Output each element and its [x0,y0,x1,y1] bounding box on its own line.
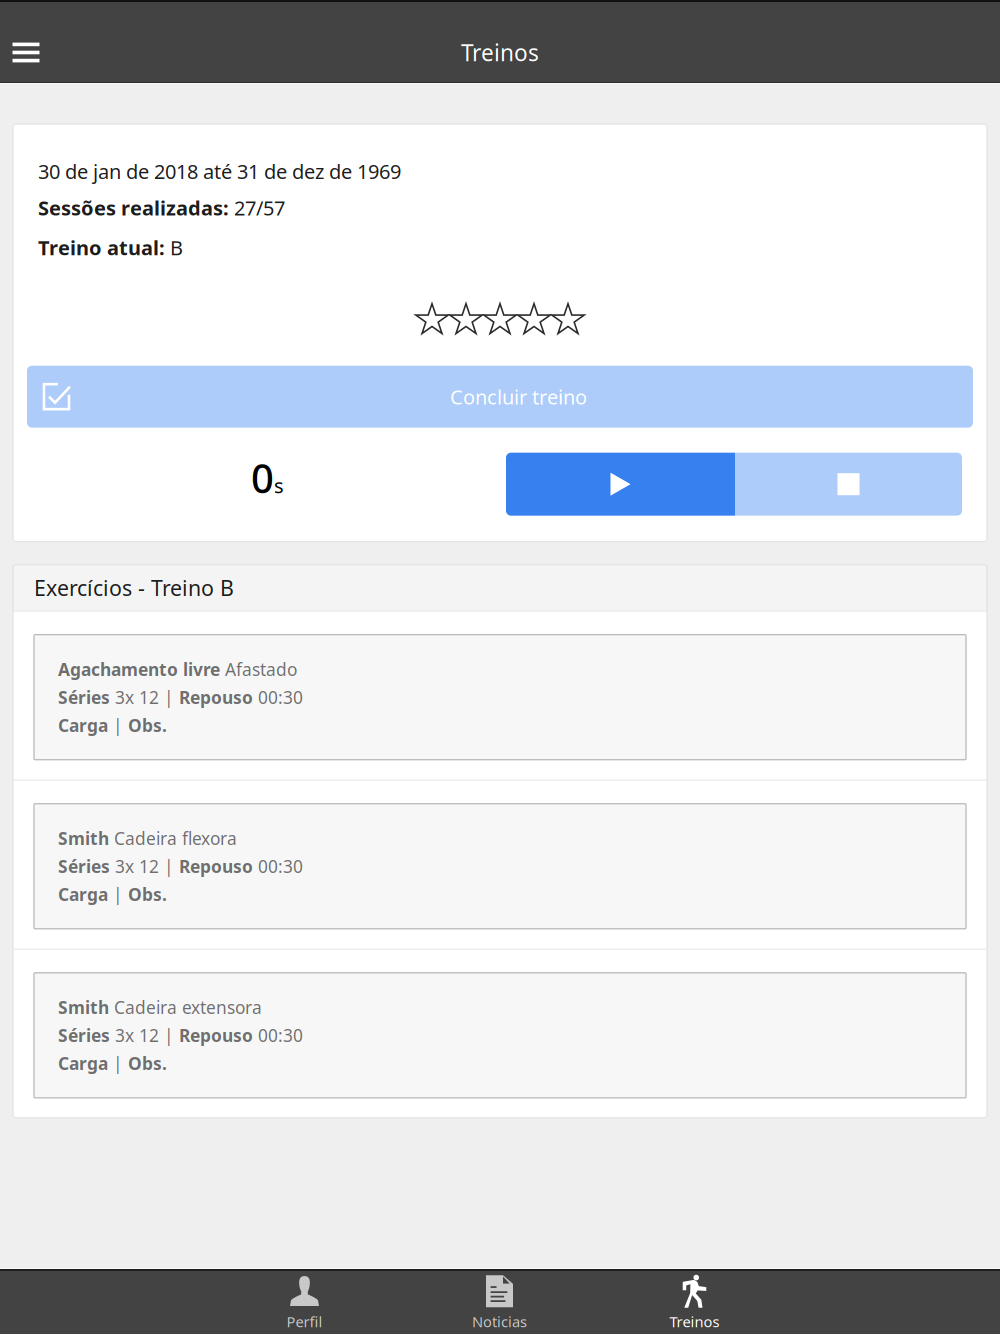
staticText: Perfil [286,1312,322,1331]
button[interactable]: Iniciar [506,453,735,516]
button[interactable]: Noticias [402,1270,597,1334]
button[interactable]: Parar [735,453,962,516]
staticText: Carga | Obs. [58,1052,167,1075]
button[interactable]: Smith Cadeira extensora [13,950,987,1118]
button[interactable]: Agachamento livre Afastado [13,612,987,780]
staticText: Séries 3x 12 | Repouso 00:30 [58,1024,303,1047]
staticText: Treinos [669,1312,719,1331]
staticText: 30 de jan de 2018 até 31 de dez de 1969 [38,158,401,185]
staticText: Treinos [461,37,539,67]
button[interactable]: Treinos [597,1270,792,1334]
staticText: Exercícios - Treino B [34,573,234,602]
staticText: Concluir treino [450,383,587,410]
button[interactable]: Perfil [207,1270,402,1334]
button[interactable]: Smith Cadeira flexora [13,781,987,949]
staticText: Séries 3x 12 | Repouso 00:30 [58,686,303,709]
staticText: Noticias [472,1312,527,1331]
staticText: Carga | Obs. [58,883,167,906]
staticText: 0s [251,451,284,504]
staticText: Carga | Obs. [58,714,167,737]
staticText: Treino atual: B [38,234,183,261]
button[interactable]: Menu [0,22,52,83]
staticText: Séries 3x 12 | Repouso 00:30 [58,855,303,878]
staticText: Smith Cadeira extensora [58,996,262,1019]
staticText: Sessões realizadas: 27/57 [38,195,285,221]
staticText: Smith Cadeira flexora [58,827,237,850]
button[interactable]: Concluir treino [27,366,973,428]
staticText: Agachamento livre Afastado [58,658,297,681]
